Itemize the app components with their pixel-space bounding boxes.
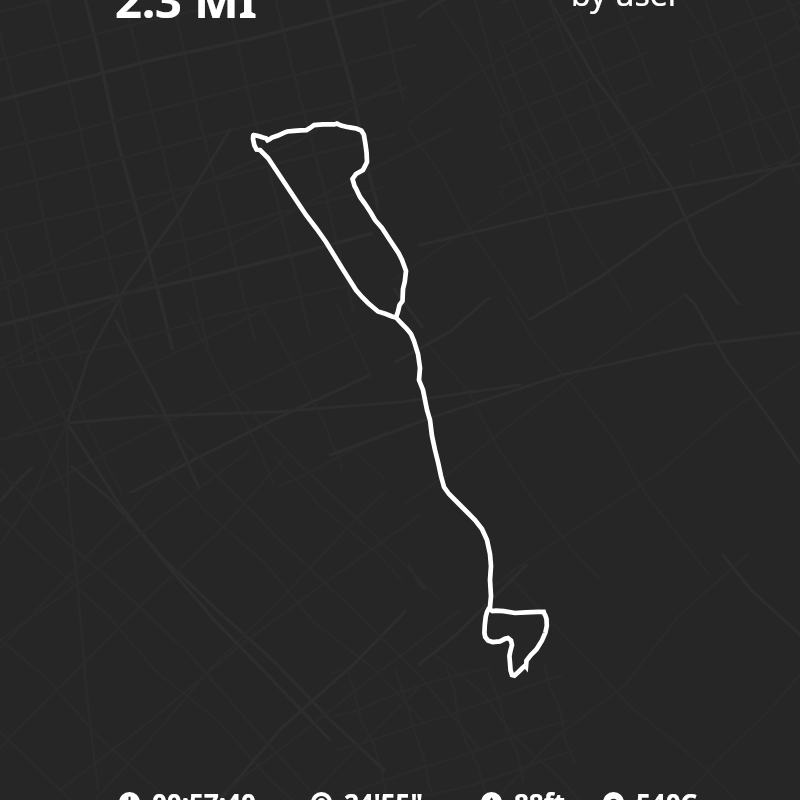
button[interactable]: Elevation (481, 791, 566, 800)
button[interactable]: Duration (119, 791, 256, 800)
staticText: by user (571, 0, 682, 16)
button[interactable]: 2.3 MI (115, 0, 257, 32)
other: Pace (311, 792, 332, 800)
staticText: 88ft (514, 785, 566, 800)
other: Duration (119, 792, 140, 800)
staticText: 24'55" (344, 785, 423, 800)
staticText: 540C (636, 785, 698, 800)
other: Calories (603, 792, 624, 800)
staticText: 00:57:40 (152, 785, 256, 800)
staticText: 2.3 MI (115, 0, 257, 32)
button[interactable]: Calories (603, 791, 698, 800)
button[interactable]: Route map (0, 0, 800, 800)
other: Elevation (481, 792, 502, 800)
button[interactable]: Pace (311, 791, 423, 800)
button[interactable]: by user (571, 0, 682, 16)
